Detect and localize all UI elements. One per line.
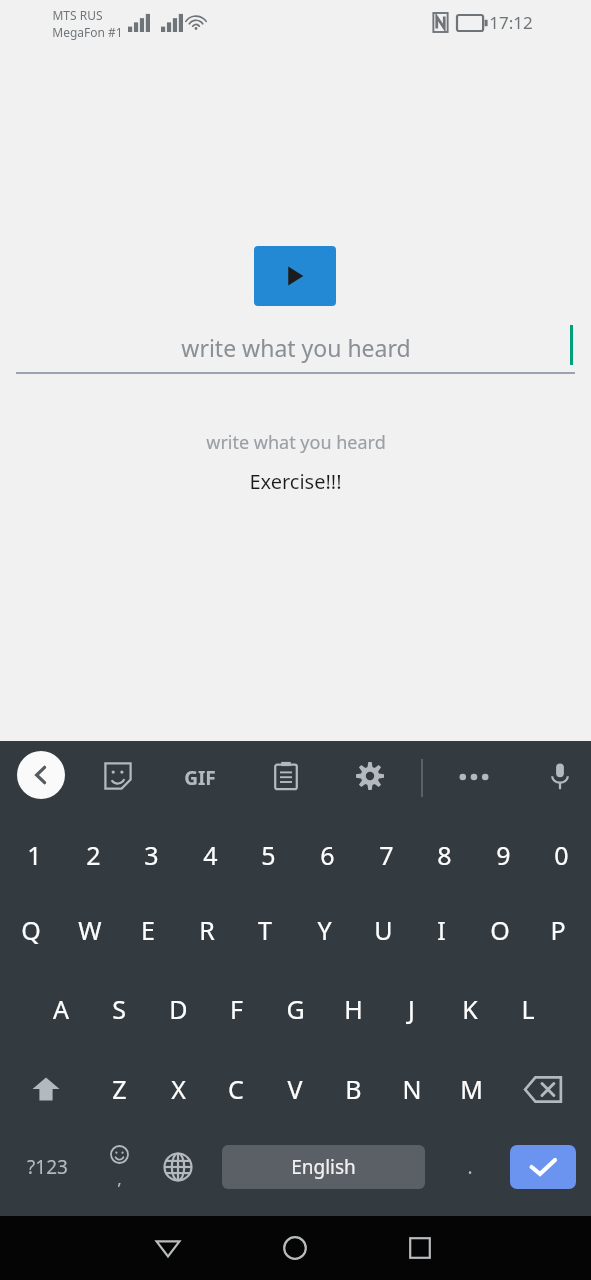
button[interactable]: Change language	[154, 1141, 202, 1193]
staticText: Q	[21, 913, 41, 947]
button[interactable]: D	[150, 983, 206, 1035]
button[interactable]: P	[530, 904, 586, 956]
button[interactable]: H	[325, 983, 381, 1035]
button[interactable]: L	[500, 983, 556, 1035]
button[interactable]: Home	[267, 1222, 323, 1274]
button[interactable]: More options	[452, 755, 496, 799]
button[interactable]: Stickers	[94, 752, 142, 800]
staticText: .	[467, 1154, 473, 1180]
staticText: 7	[379, 838, 394, 872]
staticText: 17:12	[489, 11, 533, 34]
button[interactable]: English	[222, 1145, 425, 1189]
button[interactable]: T	[237, 904, 293, 956]
button[interactable]: ?123	[14, 1141, 80, 1193]
button[interactable]: write what you heard	[0, 318, 591, 376]
staticText: English	[291, 1154, 356, 1180]
staticText: MegaFon #1	[52, 24, 123, 40]
staticText: GIF	[184, 765, 216, 791]
button[interactable]: Done	[510, 1145, 576, 1189]
button[interactable]: V	[267, 1063, 323, 1115]
button[interactable]: W	[62, 904, 118, 956]
button[interactable]: Back	[140, 1222, 196, 1274]
button[interactable]: Clipboard	[262, 752, 310, 800]
staticText: B	[345, 1072, 362, 1106]
button[interactable]: N	[384, 1063, 440, 1115]
button[interactable]: Voice input	[536, 752, 584, 800]
staticText: Exercise!!!	[249, 468, 342, 495]
staticText: L	[521, 992, 535, 1026]
staticText: K	[462, 992, 478, 1026]
button[interactable]: S	[91, 983, 147, 1035]
button[interactable]: GIF	[172, 759, 227, 797]
button[interactable]: Play audio	[254, 246, 336, 306]
staticText: F	[230, 992, 243, 1026]
button[interactable]: 7	[358, 829, 414, 881]
staticText: 2	[86, 838, 101, 872]
button[interactable]: M	[443, 1063, 499, 1115]
staticText: M	[460, 1072, 483, 1106]
staticText: write what you heard	[206, 430, 386, 455]
staticText: ,	[117, 1167, 122, 1190]
staticText: 6	[320, 838, 335, 872]
button[interactable]: Q	[3, 904, 59, 956]
staticText: 4	[203, 838, 218, 872]
staticText: O	[490, 913, 510, 947]
button[interactable]: 1	[6, 829, 62, 881]
staticText: A	[53, 992, 69, 1026]
staticText: V	[287, 1072, 303, 1106]
staticText: P	[550, 913, 566, 947]
staticText: E	[141, 913, 155, 947]
button[interactable]: 0	[533, 829, 589, 881]
button[interactable]: I	[413, 904, 469, 956]
staticText: U	[374, 913, 393, 947]
button[interactable]: 3	[123, 829, 179, 881]
button[interactable]: Settings	[346, 752, 394, 800]
staticText: 0	[554, 838, 569, 872]
staticText: C	[228, 1072, 244, 1106]
button[interactable]: J	[383, 983, 439, 1035]
staticText: X	[171, 1072, 186, 1106]
button[interactable]: .	[448, 1141, 492, 1193]
staticText: D	[169, 992, 188, 1026]
button[interactable]: Shift	[14, 1063, 78, 1115]
button[interactable]: Z	[91, 1063, 147, 1115]
staticText: 8	[437, 838, 452, 872]
staticText: R	[199, 913, 215, 947]
button[interactable]: X	[150, 1063, 206, 1115]
button[interactable]: Backspace	[511, 1063, 575, 1115]
staticText: T	[258, 913, 272, 947]
staticText: G	[286, 992, 305, 1026]
button[interactable]: C	[208, 1063, 264, 1115]
button[interactable]: 6	[299, 829, 355, 881]
button[interactable]: U	[355, 904, 411, 956]
staticText: 1	[27, 838, 42, 872]
button[interactable]: 4	[182, 829, 238, 881]
staticText: I	[437, 913, 446, 947]
staticText: Z	[112, 1072, 127, 1106]
staticText: S	[112, 992, 126, 1026]
button[interactable]: Y	[296, 904, 352, 956]
staticText: J	[408, 992, 415, 1026]
button[interactable]: O	[472, 904, 528, 956]
button[interactable]: E	[120, 904, 176, 956]
button[interactable]: Recents	[392, 1222, 448, 1274]
button[interactable]: B	[325, 1063, 381, 1115]
button[interactable]: R	[179, 904, 235, 956]
button[interactable]: K	[442, 983, 498, 1035]
button[interactable]: Emoji	[95, 1139, 143, 1195]
staticText: 9	[496, 838, 511, 872]
staticText: W	[78, 913, 102, 947]
staticText: 5	[261, 838, 276, 872]
staticText: 3	[144, 838, 159, 872]
button[interactable]: A	[33, 983, 89, 1035]
button[interactable]: 2	[65, 829, 121, 881]
button[interactable]: 8	[416, 829, 472, 881]
staticText: Y	[317, 913, 332, 947]
staticText: N	[402, 1072, 422, 1106]
button[interactable]: F	[208, 983, 264, 1035]
button[interactable]: Back	[17, 751, 65, 799]
staticText: MTS RUS	[52, 7, 103, 23]
button[interactable]: 9	[475, 829, 531, 881]
button[interactable]: 5	[240, 829, 296, 881]
button[interactable]: G	[267, 983, 323, 1035]
